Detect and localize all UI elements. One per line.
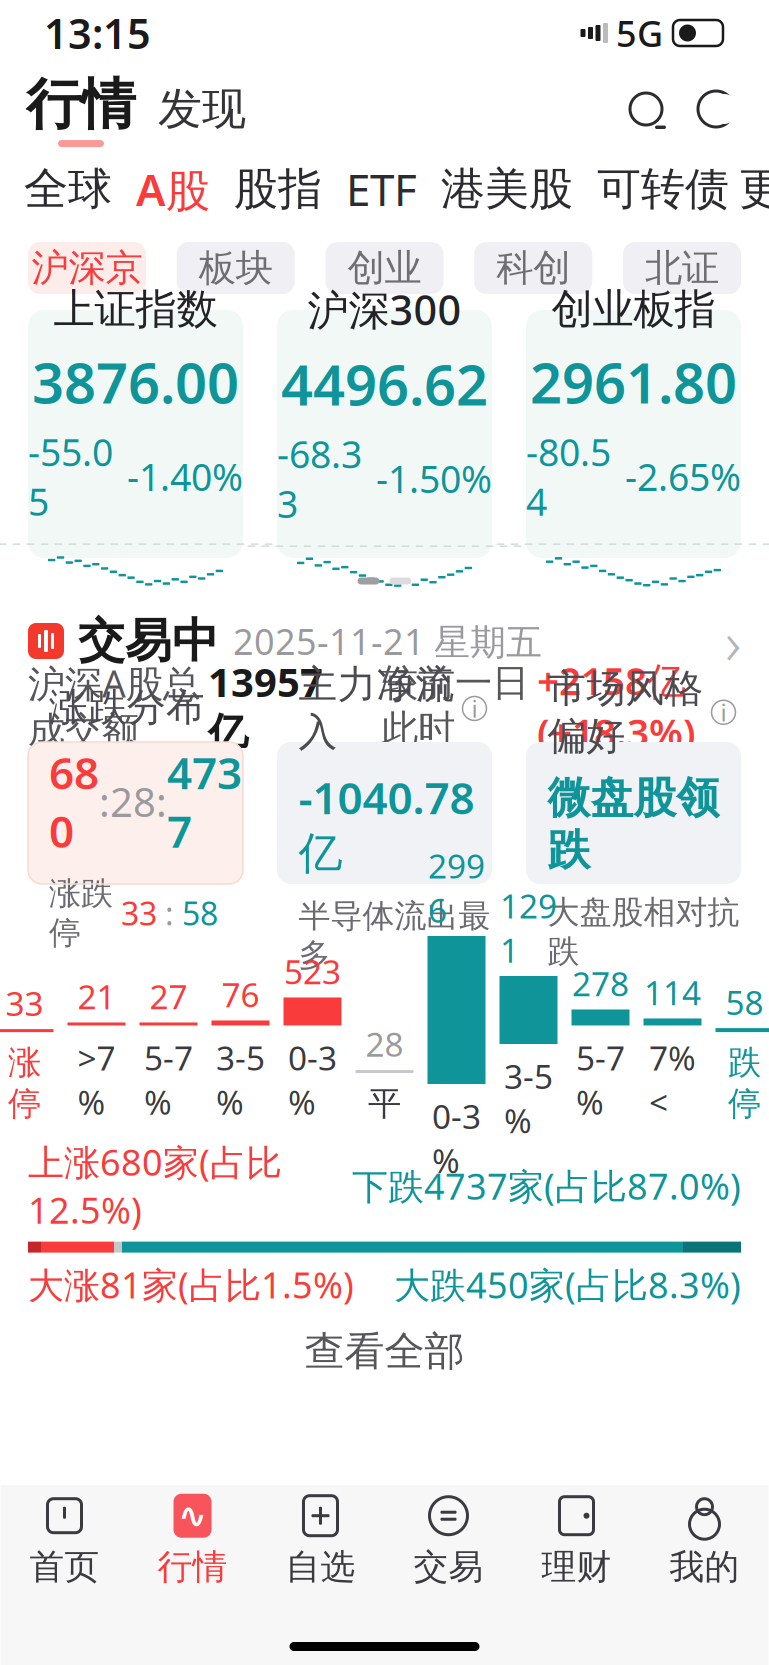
staticText: 主力净流入: [298, 661, 454, 756]
staticText: 0-3%: [432, 1094, 481, 1182]
staticText: 创业: [347, 245, 421, 291]
staticText: 自选: [285, 1546, 355, 1588]
staticText: 28: [365, 1022, 403, 1066]
button[interactable]: 北证: [623, 242, 741, 294]
staticText: -1.50%: [376, 454, 492, 503]
staticText: 278: [572, 961, 629, 1005]
staticText: 北证: [645, 245, 719, 291]
staticText: 4496.62: [281, 347, 488, 421]
button[interactable]: 理财: [512, 1489, 640, 1593]
button[interactable]: 搜索: [619, 82, 673, 136]
staticText: 21: [77, 974, 115, 1018]
button[interactable]: 交易中: [0, 604, 769, 678]
staticText: 沪深300: [307, 282, 461, 337]
staticText: 交易: [413, 1546, 483, 1588]
staticText: 76: [221, 972, 259, 1016]
staticText: 行情: [157, 1546, 227, 1588]
staticText: 科创: [496, 245, 570, 291]
button[interactable]: 板块: [177, 242, 295, 294]
staticText: A股: [136, 160, 210, 218]
staticText: 33: [5, 981, 43, 1025]
staticText: -1.40%: [127, 452, 243, 501]
button[interactable]: 沪深300: [277, 310, 492, 558]
staticText: 涨停: [8, 1042, 41, 1124]
staticText: 28: [110, 775, 156, 828]
staticText: 1291: [500, 883, 557, 972]
button[interactable]: 创业板指: [526, 310, 741, 558]
staticText: 涨跌停: [49, 874, 113, 952]
button[interactable]: ETF: [346, 150, 417, 228]
staticText: 2961.80: [530, 345, 737, 419]
staticText: 114: [644, 970, 701, 1014]
staticText: 下跌4737家(占比87.0%): [352, 1162, 741, 1210]
button[interactable]: 创业: [325, 242, 443, 294]
staticText: 市场风格偏好: [547, 665, 703, 760]
staticText: 上涨680家(占比12.5%): [28, 1138, 282, 1234]
staticText: 板块: [199, 245, 273, 291]
staticText: 58: [725, 980, 763, 1024]
staticText: 523: [284, 949, 341, 993]
button[interactable]: 可转债: [597, 152, 729, 226]
staticText: i: [720, 696, 726, 728]
button[interactable]: 自选: [256, 1489, 384, 1593]
staticText: -68.33: [277, 429, 362, 528]
staticText: 港美股: [441, 162, 573, 216]
button[interactable]: 科创: [474, 242, 592, 294]
staticText: 半导体流出最多: [298, 896, 490, 975]
staticText: 跌停: [728, 1042, 761, 1124]
staticText: 27: [149, 974, 187, 1018]
staticText: 较前一日此时: [381, 660, 529, 752]
button[interactable]: 涨跌分布: [28, 742, 243, 884]
button[interactable]: 查看全部: [0, 1308, 769, 1394]
button[interactable]: 发现: [136, 76, 252, 142]
staticText: 680: [49, 743, 99, 860]
button[interactable]: A股: [136, 150, 210, 228]
button[interactable]: 上证指数: [28, 310, 243, 558]
staticText: 3-5%: [504, 1054, 553, 1142]
staticText: -80.54: [526, 427, 611, 526]
staticText: 5-7%: [144, 1035, 193, 1124]
staticText: 2025-11-21 星期五: [233, 617, 542, 665]
staticText: 理财: [541, 1546, 611, 1588]
staticText: 发现: [158, 82, 246, 136]
staticText: 大跌450家(占比8.3%): [394, 1261, 741, 1308]
button[interactable]: 行情: [26, 71, 136, 147]
button[interactable]: 全球: [24, 152, 112, 226]
button[interactable]: 交易: [384, 1489, 512, 1593]
staticText: -1040.78亿: [298, 768, 474, 880]
staticText: 33: [121, 892, 157, 934]
button[interactable]: 沪深京: [28, 242, 146, 294]
button[interactable]: ∿: [128, 1489, 256, 1593]
staticText: >7%: [77, 1035, 115, 1124]
staticText: 5G: [616, 9, 663, 57]
staticText: 平: [368, 1083, 401, 1124]
staticText: :: [99, 775, 110, 828]
staticText: 3876.00: [32, 345, 239, 419]
staticText: ETF: [346, 160, 417, 218]
staticText: 7%<: [649, 1035, 696, 1124]
button[interactable]: 首页: [0, 1489, 128, 1593]
staticText: i: [471, 692, 477, 724]
staticText: 我的: [669, 1546, 739, 1588]
button[interactable]: 我的: [640, 1489, 768, 1593]
staticText: 13:15: [44, 6, 151, 60]
staticText: 2996: [428, 843, 485, 932]
button[interactable]: 主力净流入: [277, 742, 492, 884]
button[interactable]: 股指: [234, 152, 322, 226]
staticText: 5-7%: [576, 1035, 625, 1124]
staticText: 大盘股相对抗跌: [547, 893, 739, 971]
button[interactable]: 市场风格偏好: [526, 742, 741, 884]
staticText: 创业板指: [551, 284, 715, 335]
button[interactable]: 夜间模式: [673, 82, 743, 136]
button[interactable]: 港美股: [441, 152, 573, 226]
staticText: :: [156, 775, 167, 828]
staticText: 涨跌分布: [49, 683, 205, 731]
staticText: 13957亿: [208, 655, 323, 757]
staticText: -55.05: [28, 427, 113, 526]
staticText: ∿: [178, 1496, 207, 1535]
staticText: 交易中: [78, 612, 219, 670]
staticText: 更: [739, 162, 769, 216]
staticText: 可转债: [597, 162, 729, 216]
staticText: 3-5%: [216, 1035, 265, 1124]
staticText: 58: [182, 892, 218, 934]
